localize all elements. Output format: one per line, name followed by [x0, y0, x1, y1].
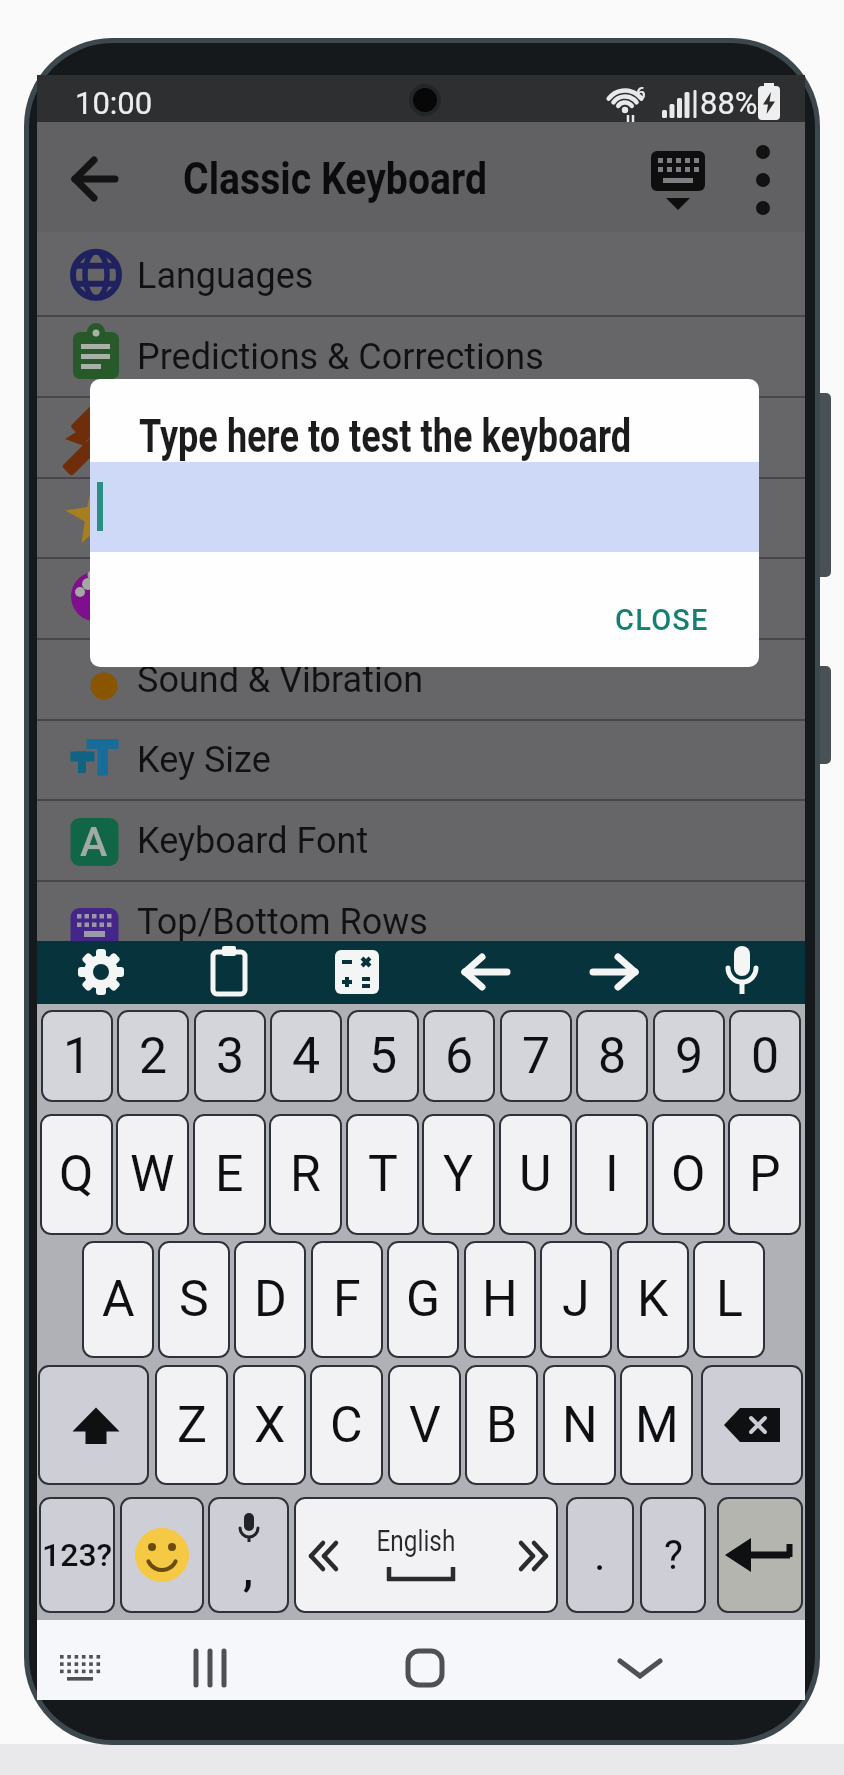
staticText: Top/Bottom Rows: [137, 901, 428, 943]
button[interactable]: ,: [208, 1497, 289, 1613]
button[interactable]: [180, 1635, 240, 1701]
button[interactable]: S: [158, 1241, 230, 1358]
button[interactable]: 7: [500, 1010, 572, 1102]
button[interactable]: M: [620, 1365, 693, 1485]
button[interactable]: C: [310, 1365, 383, 1485]
staticText: Sound & Vibration: [137, 659, 424, 701]
staticText: English: [376, 1524, 455, 1558]
staticText: O: [671, 1145, 706, 1204]
staticText: 3: [216, 1027, 245, 1086]
button[interactable]: E: [193, 1114, 266, 1235]
button[interactable]: 3: [194, 1010, 266, 1102]
button[interactable]: N: [543, 1365, 616, 1485]
staticText: Type here to test the keyboard: [139, 409, 631, 463]
button[interactable]: K: [617, 1241, 689, 1358]
button[interactable]: [37, 639, 805, 720]
button[interactable]: F: [311, 1241, 383, 1358]
button[interactable]: 9: [653, 1010, 725, 1102]
button[interactable]: [649, 151, 707, 207]
staticText: P: [749, 1145, 781, 1204]
staticText: 9: [675, 1027, 704, 1086]
button[interactable]: 5: [347, 1010, 419, 1102]
button[interactable]: [450, 942, 520, 1003]
button[interactable]: [610, 1635, 670, 1701]
button[interactable]: 2: [117, 1010, 189, 1102]
button[interactable]: H: [464, 1241, 536, 1358]
staticText: E: [215, 1145, 244, 1204]
staticText: ,: [243, 1542, 254, 1596]
button[interactable]: J: [540, 1241, 612, 1358]
staticText: X: [254, 1396, 286, 1455]
button[interactable]: 123?: [39, 1497, 115, 1613]
button[interactable]: V: [388, 1365, 461, 1485]
button[interactable]: [578, 942, 648, 1003]
button[interactable]: Z: [155, 1365, 228, 1485]
staticText: 4: [292, 1027, 321, 1086]
staticText: Z: [177, 1396, 207, 1455]
button[interactable]: [706, 942, 776, 1003]
button[interactable]: [37, 881, 805, 962]
button[interactable]: [37, 397, 805, 478]
button[interactable]: 8: [576, 1010, 648, 1102]
button[interactable]: [395, 1635, 455, 1701]
button[interactable]: U: [499, 1114, 572, 1235]
button[interactable]: [701, 1365, 803, 1485]
button[interactable]: [37, 558, 805, 639]
button[interactable]: W: [116, 1114, 189, 1235]
button[interactable]: [120, 1497, 204, 1613]
button[interactable]: [194, 942, 264, 1003]
staticText: W: [130, 1145, 175, 1204]
button[interactable]: Y: [422, 1114, 495, 1235]
button[interactable]: [737, 145, 789, 215]
button[interactable]: [50, 1635, 110, 1701]
button[interactable]: [37, 478, 805, 559]
button[interactable]: O: [652, 1114, 725, 1235]
button[interactable]: [37, 316, 805, 397]
button[interactable]: 1: [41, 1010, 113, 1102]
button[interactable]: I: [575, 1114, 648, 1235]
button[interactable]: [38, 1365, 149, 1485]
staticText: Y: [443, 1145, 474, 1204]
staticText: B: [486, 1396, 518, 1455]
button[interactable]: 0: [729, 1010, 801, 1102]
staticText: Languages: [137, 255, 314, 297]
button[interactable]: B: [465, 1365, 538, 1485]
button[interactable]: X: [233, 1365, 306, 1485]
staticText: M: [635, 1396, 679, 1455]
staticText: 1: [63, 1027, 92, 1086]
staticText: N: [562, 1396, 598, 1455]
button[interactable]: P: [728, 1114, 801, 1235]
staticText: Q: [59, 1145, 94, 1204]
button[interactable]: ?: [640, 1497, 706, 1613]
staticText: F: [333, 1270, 361, 1329]
button[interactable]: [67, 151, 123, 207]
button[interactable]: [66, 942, 136, 1003]
button[interactable]: D: [234, 1241, 306, 1358]
button[interactable]: A: [82, 1241, 154, 1358]
staticText: R: [290, 1145, 321, 1204]
staticText: A: [102, 1270, 135, 1329]
button[interactable]: English: [294, 1497, 558, 1613]
staticText: U: [519, 1145, 552, 1204]
button[interactable]: .: [566, 1497, 634, 1613]
button[interactable]: [37, 800, 805, 881]
button[interactable]: [717, 1497, 803, 1613]
button[interactable]: 4: [270, 1010, 342, 1102]
button[interactable]: Q: [40, 1114, 113, 1235]
staticText: CLOSE: [615, 603, 709, 637]
button[interactable]: R: [269, 1114, 342, 1235]
staticText: L: [716, 1270, 743, 1329]
button[interactable]: L: [693, 1241, 765, 1358]
button[interactable]: G: [387, 1241, 459, 1358]
staticText: .: [594, 1529, 606, 1581]
staticText: ?: [664, 1532, 683, 1579]
staticText: 7: [522, 1027, 551, 1086]
button[interactable]: [37, 236, 805, 317]
button[interactable]: [322, 942, 392, 1003]
button[interactable]: [37, 720, 805, 801]
button[interactable]: T: [346, 1114, 419, 1235]
button[interactable]: CLOSE: [597, 595, 727, 645]
button[interactable]: 6: [423, 1010, 495, 1102]
staticText: 8: [598, 1027, 627, 1086]
staticText: V: [409, 1396, 441, 1455]
